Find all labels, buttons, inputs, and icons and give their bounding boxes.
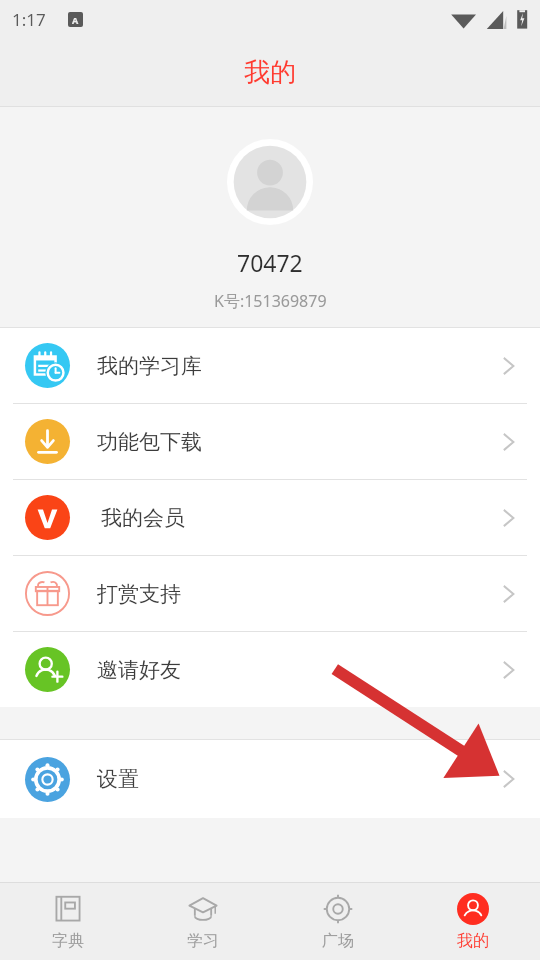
button[interactable]: 我的学习库 [0,328,540,403]
button[interactable]: 功能包下载 [0,404,540,479]
staticText: K号:151369879 [214,290,327,312]
button[interactable]: 学习 [135,883,270,960]
staticText: 70472 [237,247,303,278]
staticText: 设置 [97,766,139,792]
staticText: 邀请好友 [97,657,181,683]
staticText: 广场 [322,931,354,951]
staticText: 我的 [244,56,296,89]
button[interactable]: 打赏支持 [0,556,540,631]
staticText: 我的会员 [101,505,185,531]
staticText: 功能包下载 [97,429,202,455]
staticText: 1:17 [12,8,46,31]
button[interactable]: 我的会员 [0,480,540,555]
button[interactable]: 我的 [405,883,540,960]
staticText: 我的 [457,931,489,951]
staticText: 字典 [52,931,84,951]
button[interactable]: 邀请好友 [0,632,540,707]
button[interactable]: 广场 [270,883,405,960]
staticText: 我的学习库 [97,353,202,379]
staticText: A [72,14,79,26]
staticText: 打赏支持 [97,581,181,607]
button[interactable]: 字典 [0,883,135,960]
staticText: 学习 [187,931,219,951]
button[interactable]: 设置 [0,740,540,818]
